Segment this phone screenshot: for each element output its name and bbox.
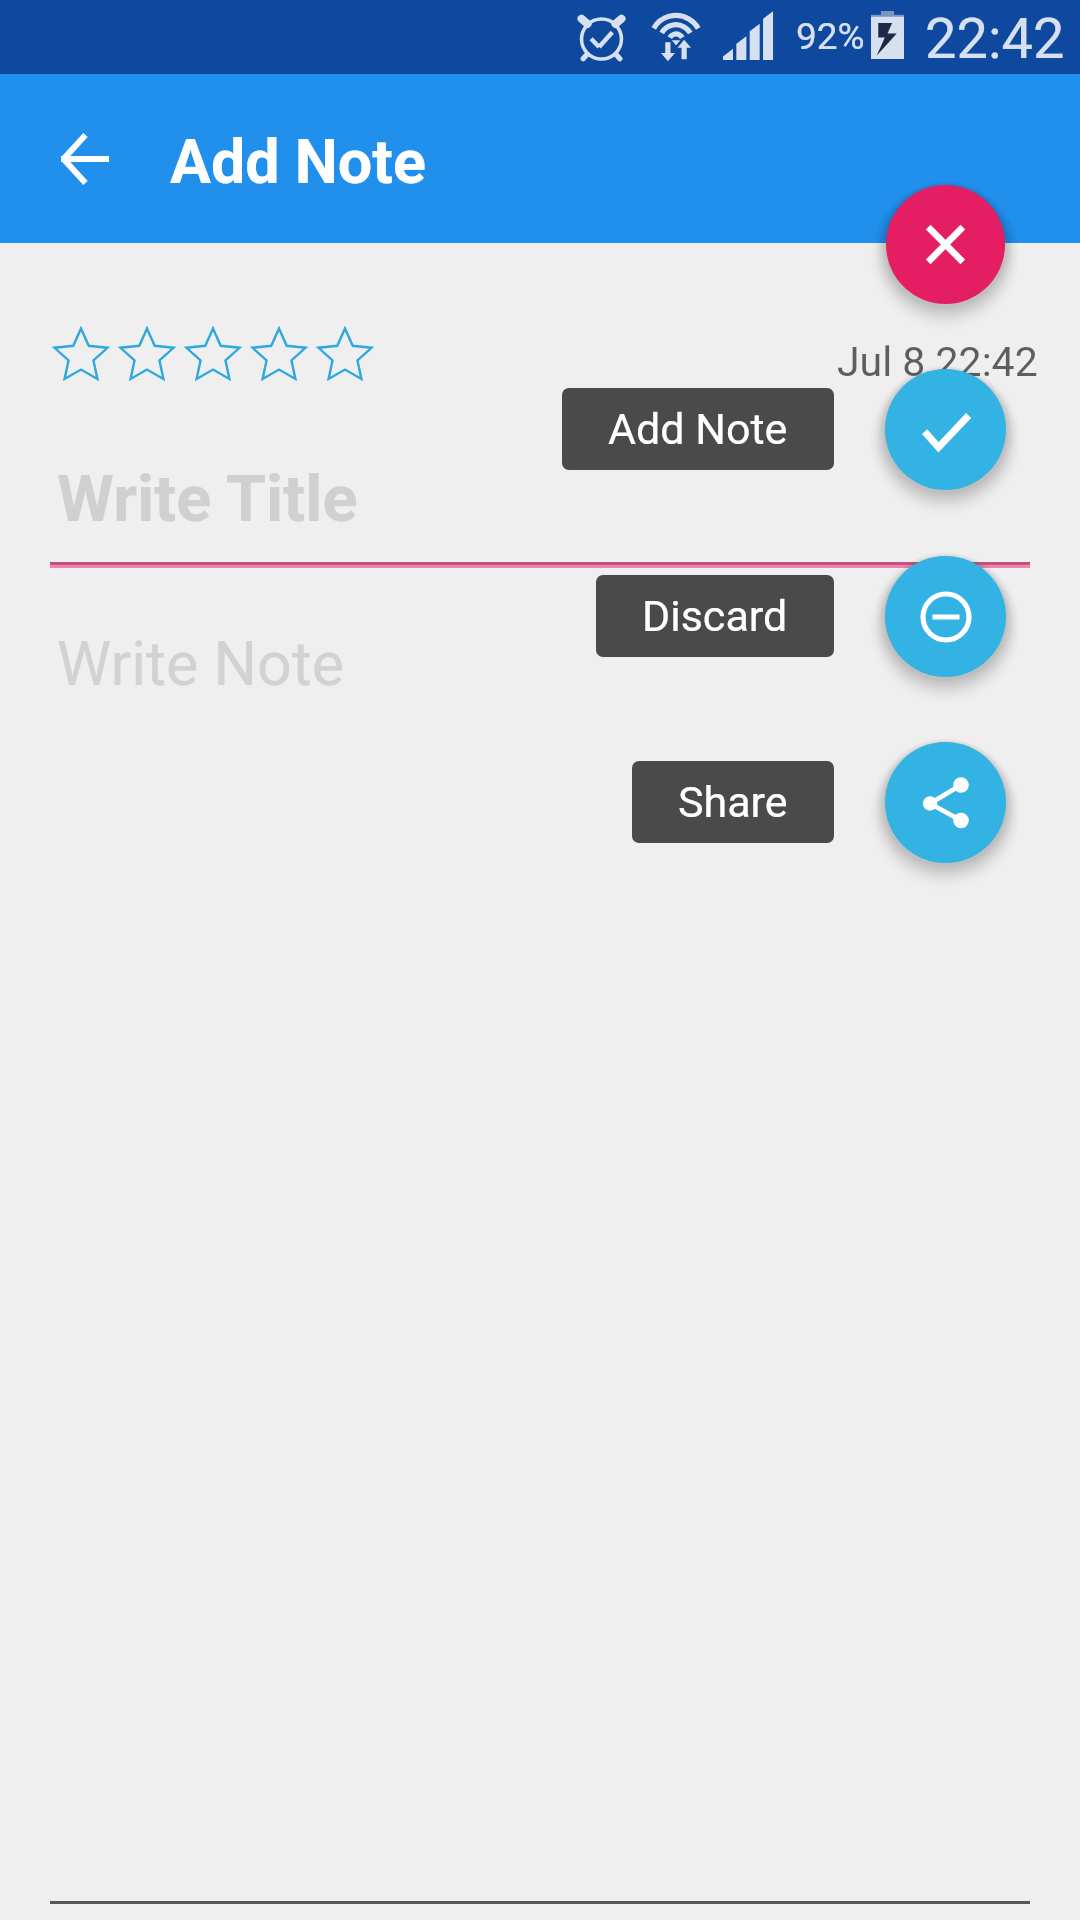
staticText: Write Note (57, 628, 345, 699)
staticText: Write Title (57, 461, 358, 537)
staticText: Jul 8 22:42 (837, 338, 1038, 386)
button[interactable]: Share (885, 742, 1006, 863)
button[interactable]: Discard (885, 556, 1006, 677)
staticText: Share (678, 777, 788, 827)
button[interactable]: Back (24, 99, 144, 219)
button[interactable]: Share (632, 761, 834, 843)
staticText: 22:42 (925, 6, 1065, 72)
staticText: Add Note (608, 404, 788, 454)
button[interactable]: Rate 5 stars (318, 328, 384, 380)
button[interactable]: Close menu (886, 185, 1005, 304)
button[interactable]: Rate 3 stars (186, 328, 252, 380)
button[interactable]: Discard (596, 575, 834, 657)
button[interactable]: Rate 2 stars (120, 328, 186, 380)
staticText: 92% (796, 15, 865, 58)
button[interactable]: Rate 1 stars (54, 328, 120, 380)
button[interactable]: Add Note (562, 388, 834, 470)
staticText: Add Note (170, 126, 426, 197)
button[interactable]: Add Note (885, 369, 1006, 490)
staticText: Discard (642, 591, 788, 641)
button[interactable]: Rate 4 stars (252, 328, 318, 380)
